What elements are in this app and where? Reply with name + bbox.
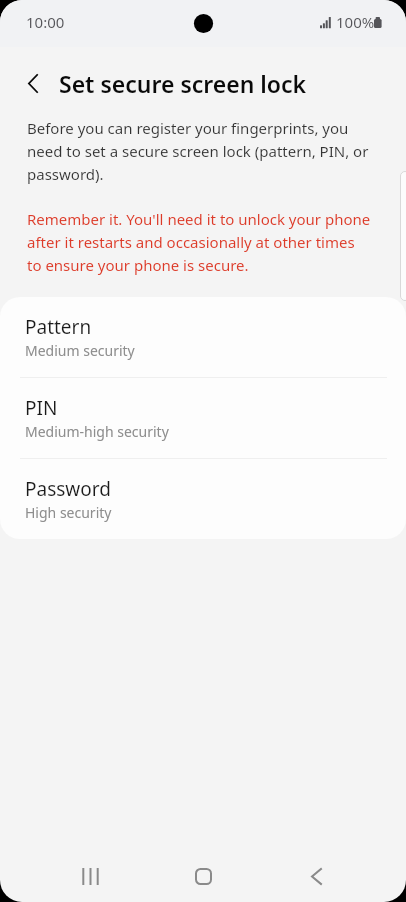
button[interactable]: Home	[179, 852, 227, 900]
staticText: Before you can register your fingerprint…	[27, 118, 371, 184]
button[interactable]: Pattern	[0, 297, 406, 377]
staticText: Pattern	[25, 314, 92, 340]
button[interactable]: Navigate up	[11, 61, 55, 105]
button[interactable]: Back	[292, 852, 340, 900]
button[interactable]: PIN	[0, 378, 406, 458]
staticText: Remember it. You'll need it to unlock yo…	[27, 209, 371, 275]
button[interactable]: Recent apps	[66, 852, 114, 900]
staticText: 100%	[336, 12, 375, 32]
staticText: High security	[25, 503, 112, 522]
staticText: Medium security	[25, 341, 135, 360]
button[interactable]: Password	[0, 459, 406, 539]
staticText: Password	[25, 476, 111, 502]
staticText: Set secure screen lock	[59, 68, 307, 99]
staticText: Medium-high security	[25, 422, 169, 441]
staticText: 10:00	[26, 12, 65, 32]
staticText: PIN	[25, 395, 58, 421]
